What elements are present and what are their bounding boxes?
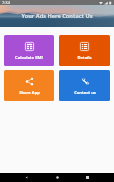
button[interactable]: Share App xyxy=(4,70,54,101)
button[interactable]: Home xyxy=(53,173,62,182)
staticText: 7:34 xyxy=(2,0,10,5)
staticText: Calculate EMI xyxy=(15,55,43,61)
staticText: Details xyxy=(77,55,92,61)
button[interactable]: Back xyxy=(22,173,31,182)
button[interactable]: Contact us xyxy=(59,70,110,101)
button[interactable]: Calculate EMI xyxy=(4,35,54,66)
staticText: Share App xyxy=(19,90,40,96)
staticText: Your Ads Here Contact Us xyxy=(21,12,93,20)
staticText: Contact us xyxy=(74,90,96,96)
button[interactable]: Details xyxy=(59,35,110,66)
button[interactable]: Advertisement banner xyxy=(0,5,114,27)
button[interactable]: Recent apps xyxy=(83,173,92,182)
